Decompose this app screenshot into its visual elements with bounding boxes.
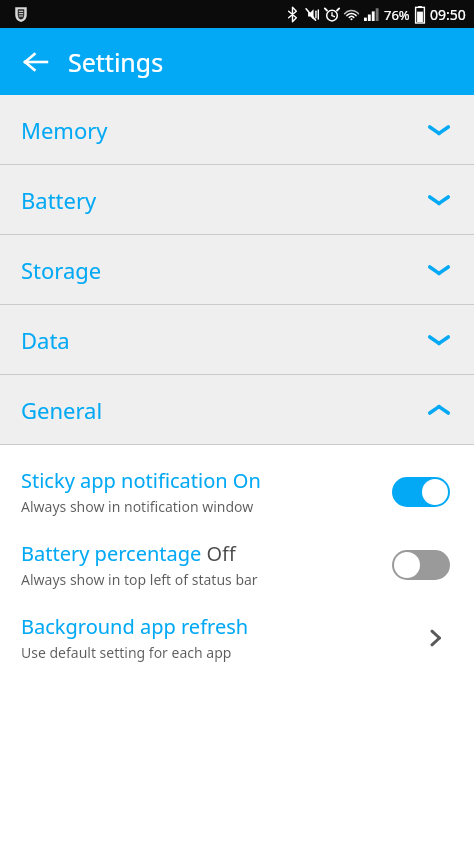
staticText: Use default setting for each app [21,643,232,662]
button[interactable]: Battery percentage off [390,543,452,587]
staticText: Settings [68,45,164,79]
button[interactable]: Storage [0,235,474,304]
staticText: 09:50 [430,5,466,24]
staticText: Memory [21,115,108,145]
staticText: Battery percentage Off [21,540,236,567]
button[interactable]: Data [0,305,474,374]
staticText: Battery [21,185,97,215]
button[interactable]: Memory [0,95,474,164]
staticText: Always show in notification window [21,497,254,516]
button[interactable]: Battery [0,165,474,234]
staticText: Background app refresh [21,613,249,640]
button[interactable]: Background app refresh [0,601,474,674]
staticText: Data [21,325,70,355]
button[interactable]: Back [14,40,58,84]
staticText: Always show in top left of status bar [21,570,258,589]
button[interactable]: Sticky app notification On [0,455,474,528]
button[interactable]: Sticky app notification on [390,470,452,514]
button[interactable]: General [0,375,474,444]
button[interactable]: Battery percentage Off [0,528,474,601]
staticText: 76% [384,6,410,24]
staticText: Sticky app notification On [21,467,261,494]
staticText: Storage [21,255,102,285]
staticText: General [21,395,103,425]
